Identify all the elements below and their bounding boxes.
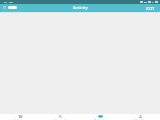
button[interactable]: Logo [8,6,17,9]
staticText: Home [15,118,25,120]
button[interactable]: Profile [120,114,160,120]
button[interactable]: Home [0,114,40,120]
staticText: Activity [73,5,88,11]
button[interactable]: Activity [80,114,120,120]
button[interactable]: Search [40,114,80,120]
staticText: Profile [135,118,146,120]
staticText: Activity [94,118,106,120]
button[interactable]: Exit [145,6,156,11]
staticText: EXIT [146,6,155,11]
staticText: Search [55,118,66,120]
button[interactable]: Menu [2,6,7,11]
